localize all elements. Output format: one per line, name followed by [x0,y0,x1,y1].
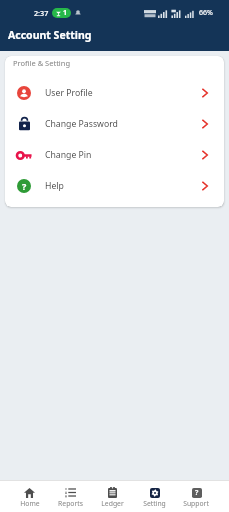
staticText: 2:37 [34,8,49,18]
staticText: Support [183,499,209,508]
staticText: Ledger [101,499,124,508]
button[interactable]: Change Password [5,108,224,139]
staticText: 66% [199,8,213,18]
staticText: ? [195,488,199,498]
staticText: Account Setting [8,28,92,42]
staticText: Change Pin [45,149,92,161]
staticText: Setting [143,499,166,508]
staticText: Reports [58,499,83,508]
button[interactable]: Setting [133,481,175,512]
button[interactable]: Reports [50,481,91,512]
staticText: User Profile [45,87,93,99]
staticText: Change Password [45,118,118,130]
staticText: 1 [63,8,68,18]
staticText: Profile & Setting [13,58,71,68]
button[interactable]: Home [9,481,50,512]
staticText: Help [45,180,64,192]
button[interactable]: Change Pin [5,139,224,170]
button[interactable]: Help [5,170,224,201]
button[interactable]: Support [175,481,217,512]
staticText: Home [20,499,40,508]
staticText: ? [22,180,27,192]
button[interactable]: User Profile [5,77,224,108]
button[interactable]: Ledger [91,481,133,512]
